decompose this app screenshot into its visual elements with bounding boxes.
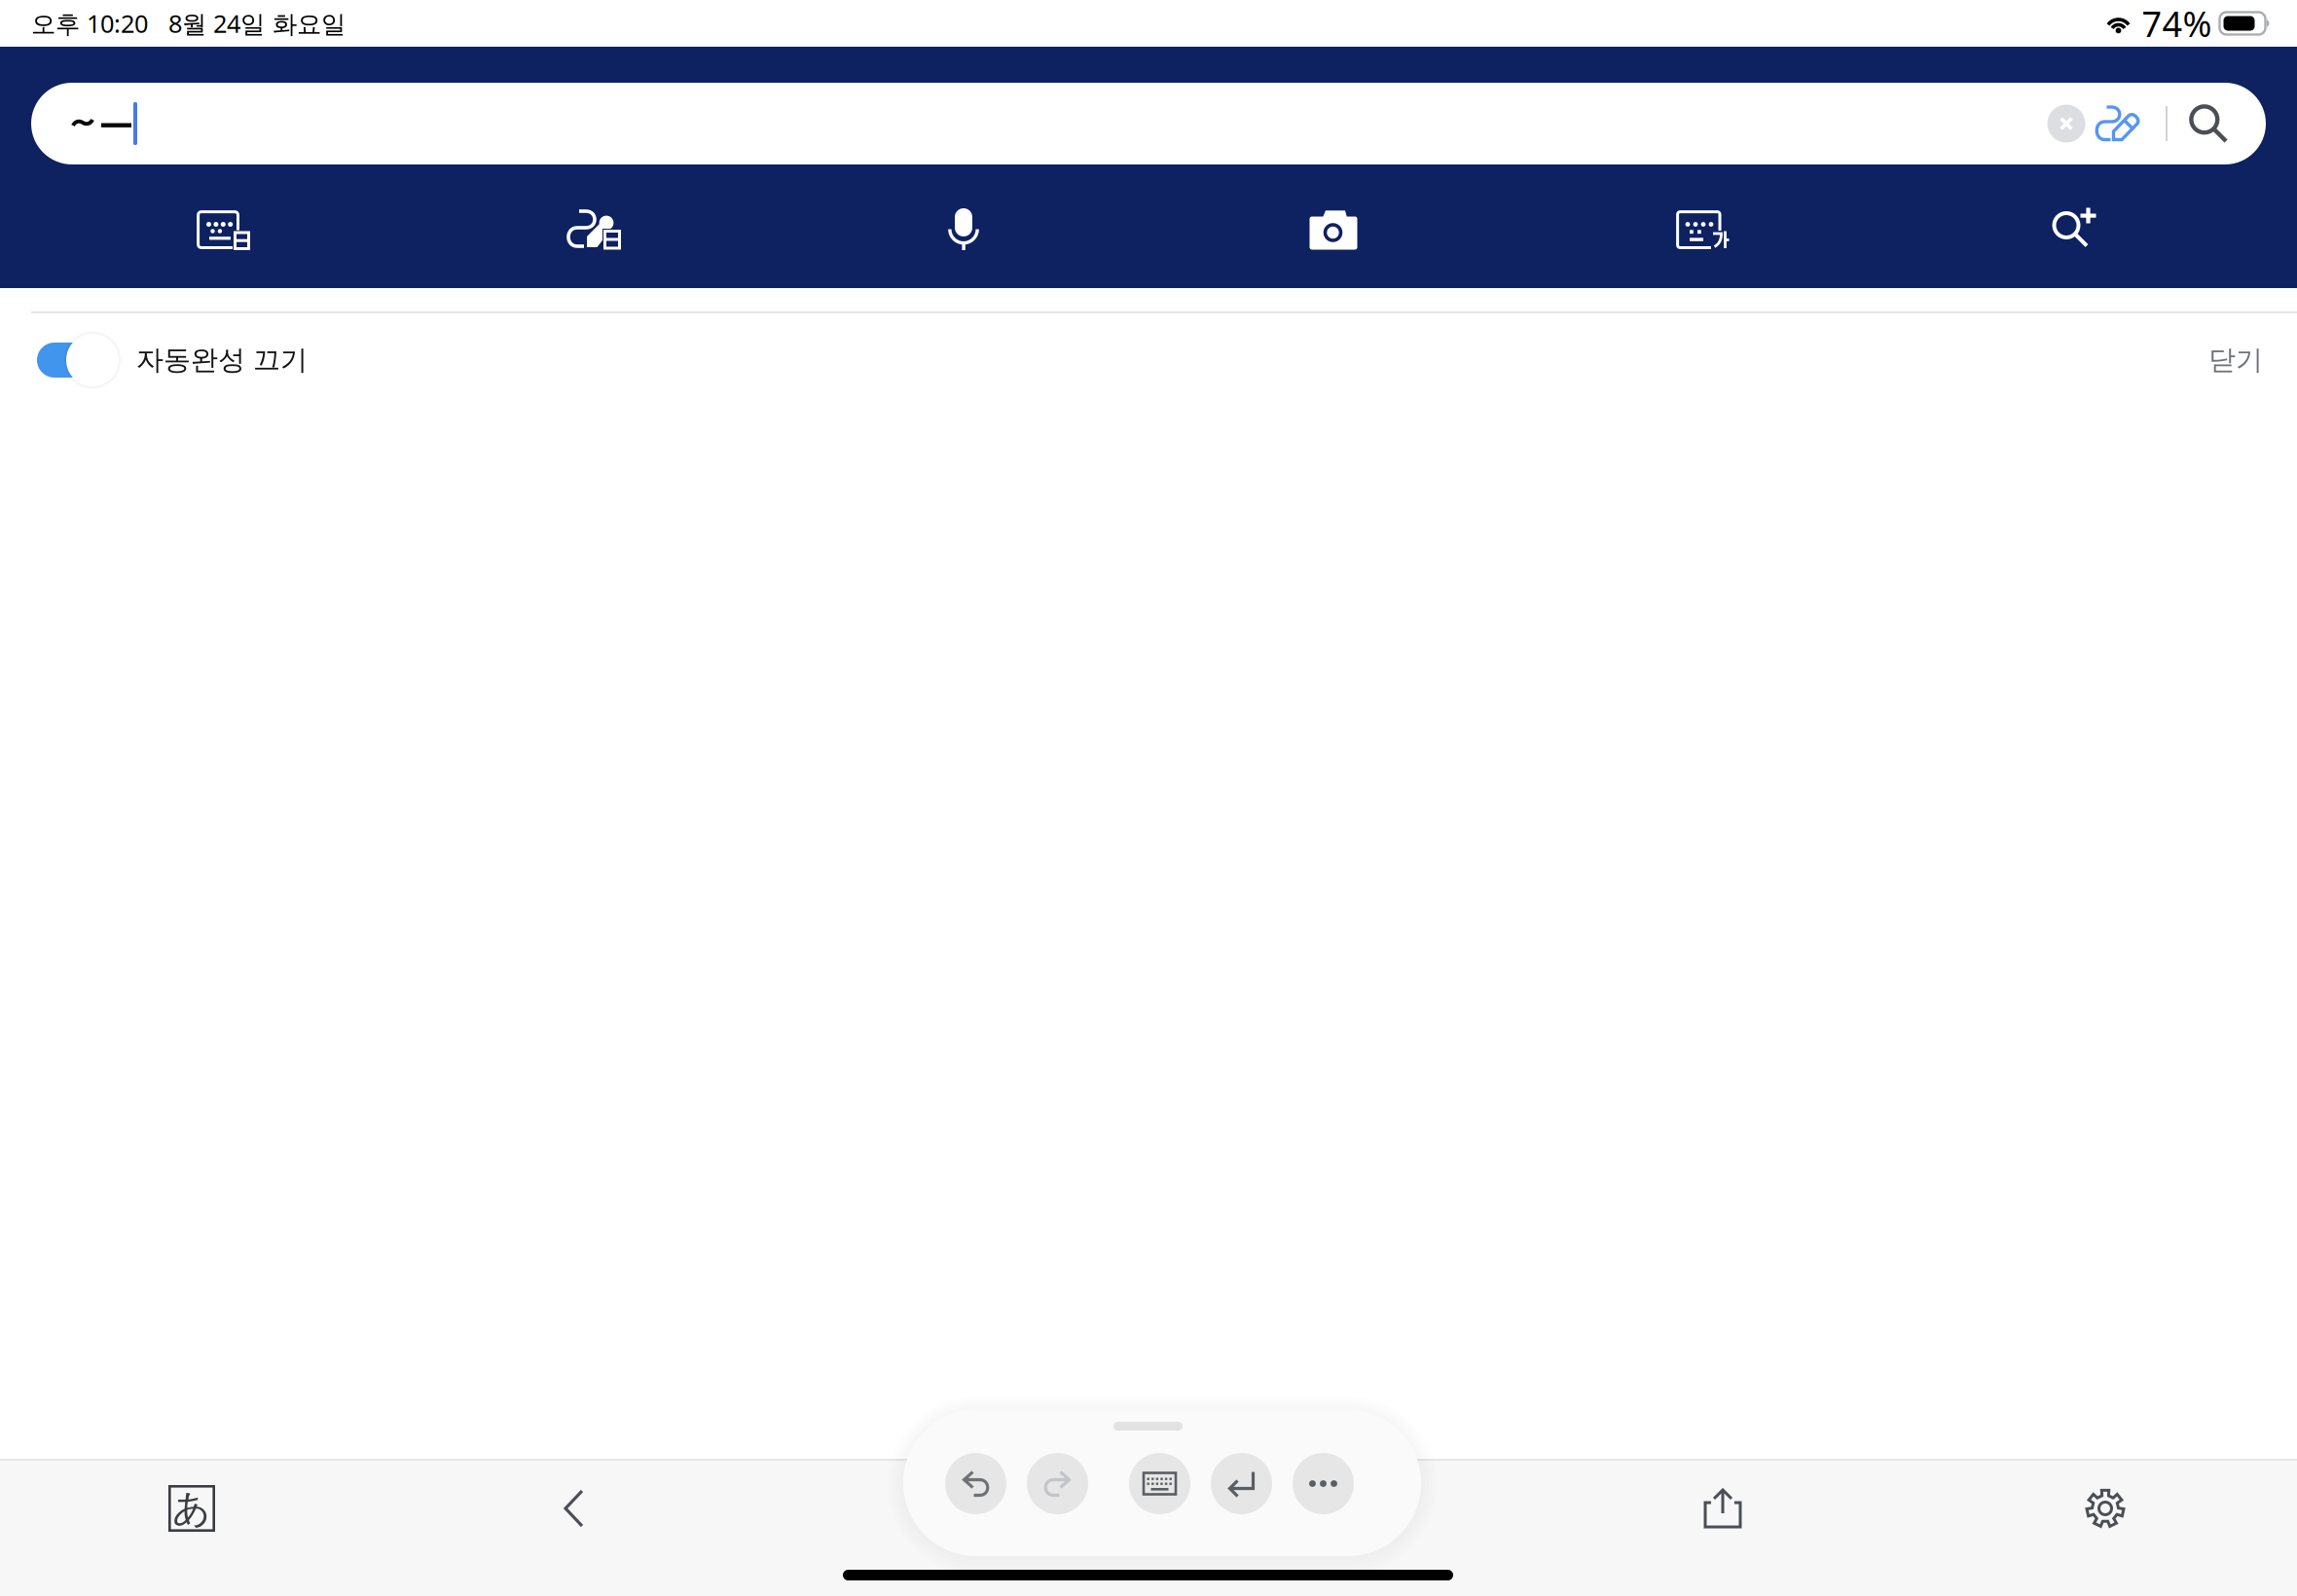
staticText: 74% bbox=[2142, 0, 2212, 47]
button[interactable]: Japanese keyboard bbox=[39, 181, 409, 278]
staticText: 오후 10:20 8월 24일 화요일 bbox=[31, 7, 346, 40]
button[interactable]: Redo bbox=[1027, 1453, 1088, 1514]
button[interactable]: Korean keyboard bbox=[1518, 181, 1888, 278]
button[interactable]: Share bbox=[1703, 1488, 1742, 1529]
button[interactable]: 자동완성 끄기 bbox=[0, 313, 973, 407]
button[interactable]: Settings bbox=[2084, 1487, 2127, 1530]
button[interactable]: Camera search bbox=[1148, 181, 1518, 278]
button[interactable]: Keyboard bbox=[1129, 1453, 1190, 1514]
button[interactable]: Input mode bbox=[168, 1485, 215, 1532]
button[interactable]: Voice search bbox=[779, 181, 1148, 278]
button[interactable]: Undo bbox=[945, 1453, 1006, 1514]
staticText: 자동완성 끄기 bbox=[136, 343, 308, 377]
staticText: あ bbox=[172, 1485, 211, 1532]
button[interactable]: Advanced search bbox=[1888, 181, 2258, 278]
button[interactable]: Handwriting input bbox=[2087, 90, 2149, 158]
button[interactable]: More bbox=[1293, 1453, 1354, 1514]
button[interactable]: Clear bbox=[2046, 90, 2087, 158]
staticText: 닫기 bbox=[2208, 343, 2263, 377]
button[interactable]: 닫기 bbox=[2153, 313, 2297, 407]
button[interactable]: Handwriting bbox=[409, 181, 779, 278]
button[interactable]: Return bbox=[1211, 1453, 1272, 1514]
button[interactable]: Back bbox=[555, 1489, 594, 1528]
button[interactable]: Search bbox=[2180, 90, 2237, 158]
